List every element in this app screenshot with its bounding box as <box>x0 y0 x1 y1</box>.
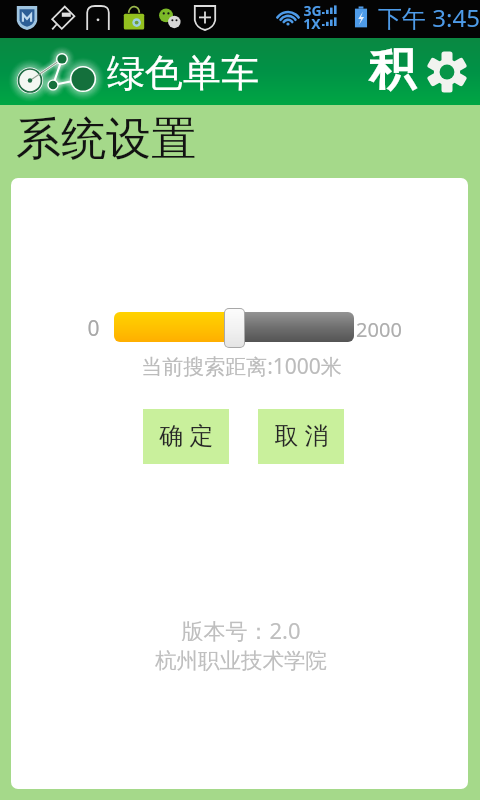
staticText: 积 <box>369 41 415 99</box>
staticText: 下午 3:45 <box>378 1 480 34</box>
staticText: 0 <box>87 314 100 343</box>
staticText: 3G <box>303 1 322 20</box>
staticText: 系统设置 <box>16 111 196 168</box>
staticText: 1X <box>303 14 321 33</box>
staticText: 确 定 <box>159 418 214 451</box>
staticText: 杭州职业技术学院 <box>155 647 327 674</box>
staticText: 当前搜索距离:1000米 <box>141 352 342 381</box>
button[interactable]: Points <box>364 42 420 102</box>
staticText: 绿色单车 <box>107 49 259 97</box>
staticText: 2000 <box>356 316 402 343</box>
button[interactable]: Settings <box>424 46 470 98</box>
button[interactable]: 取 消 <box>258 409 344 464</box>
staticText: 取 消 <box>274 418 329 451</box>
button[interactable]: Distance slider <box>225 309 244 347</box>
staticText: 版本号：2.0 <box>181 615 301 645</box>
button[interactable]: 确 定 <box>143 409 229 464</box>
